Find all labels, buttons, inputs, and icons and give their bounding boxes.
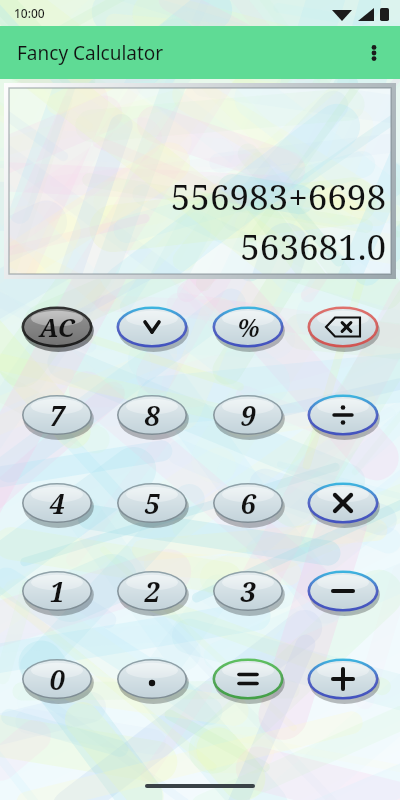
button[interactable]: Plus <box>305 655 381 703</box>
button[interactable]: Backspace <box>305 303 381 351</box>
button[interactable]: 1 <box>19 567 95 615</box>
button[interactable]: 9 <box>210 391 286 439</box>
staticText: 556983+6698 <box>170 173 386 221</box>
button[interactable]: 7 <box>19 391 95 439</box>
button[interactable]: Multiply <box>305 479 381 527</box>
button[interactable]: Power <box>114 303 190 351</box>
button[interactable]: 6 <box>210 479 286 527</box>
staticText: 1 <box>49 573 65 610</box>
button[interactable]: 2 <box>114 567 190 615</box>
button[interactable]: Divide <box>305 391 381 439</box>
staticText: Fancy Calculator <box>17 40 164 66</box>
staticText: 7 <box>49 397 65 434</box>
staticText: 5 <box>144 485 160 522</box>
button[interactable]: More options <box>354 33 394 73</box>
staticText: 0 <box>49 661 65 698</box>
button[interactable]: AC <box>19 303 95 351</box>
button[interactable]: 0 <box>19 655 95 703</box>
button[interactable]: Equals <box>210 655 286 703</box>
staticText: 563681.0 <box>240 223 386 271</box>
button[interactable]: 5 <box>114 479 190 527</box>
staticText: 8 <box>144 397 160 434</box>
staticText: 10:00 <box>14 5 45 21</box>
staticText: % <box>237 310 260 344</box>
button[interactable]: Minus <box>305 567 381 615</box>
staticText: 9 <box>240 397 256 434</box>
button[interactable]: 3 <box>210 567 286 615</box>
staticText: AC <box>39 310 75 344</box>
button[interactable]: 4 <box>19 479 95 527</box>
staticText: 4 <box>49 485 65 522</box>
staticText: 2 <box>144 573 160 610</box>
button[interactable]: Decimal point <box>114 655 190 703</box>
button[interactable]: % <box>210 303 286 351</box>
staticText: 6 <box>240 485 256 522</box>
staticText: 3 <box>240 573 256 610</box>
button[interactable]: 8 <box>114 391 190 439</box>
